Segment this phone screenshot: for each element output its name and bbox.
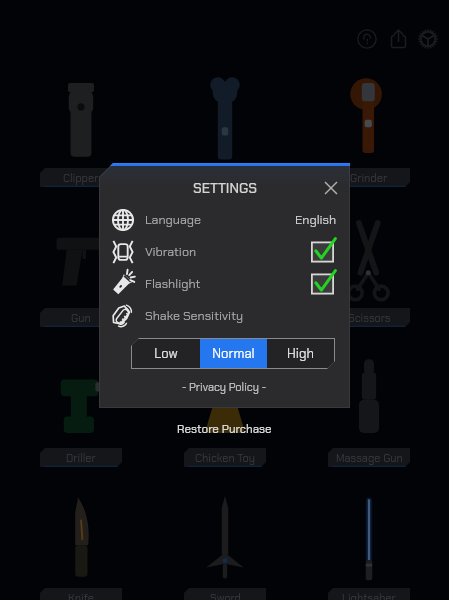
button[interactable]: Grinder — [328, 168, 410, 187]
staticText: Clipper — [63, 171, 99, 185]
button[interactable]: Vibration — [99, 236, 350, 268]
staticText: Gun — [71, 311, 91, 325]
button[interactable]: Shake Sensitivity — [99, 300, 350, 332]
button[interactable]: Language — [99, 204, 350, 236]
button[interactable]: Driller — [40, 448, 122, 467]
staticText: Hammer — [204, 311, 247, 325]
button[interactable]: Shaver — [184, 168, 266, 187]
staticText: Knife — [68, 591, 94, 600]
button[interactable]: High — [267, 339, 334, 368]
button[interactable]: Massage Gun — [328, 448, 410, 467]
button[interactable]: Help — [355, 27, 379, 51]
staticText: Flashlight — [145, 276, 201, 292]
button[interactable]: Clipper — [40, 168, 122, 187]
button[interactable]: Restore Purchase — [177, 422, 272, 437]
staticText: Chicken Toy — [195, 451, 256, 465]
staticText: Massage Gun — [336, 451, 403, 465]
staticText: Vibration — [145, 244, 197, 260]
staticText: Sword — [210, 591, 241, 600]
button[interactable]: Toggle — [318, 268, 334, 300]
button[interactable]: Gun — [40, 308, 122, 327]
staticText: Low — [154, 345, 178, 362]
staticText: Normal — [212, 345, 255, 362]
button[interactable]: Flashlight — [99, 268, 350, 300]
button[interactable]: Close — [321, 178, 341, 198]
staticText: High — [287, 345, 314, 362]
button[interactable]: Hammer — [184, 308, 266, 327]
button[interactable]: Settings — [416, 27, 440, 51]
staticText: Lightsaber — [342, 591, 396, 600]
staticText: SETTINGS — [193, 179, 257, 197]
button[interactable]: Scissors — [328, 308, 410, 327]
staticText: Language — [145, 212, 202, 228]
staticText: Scissors — [348, 311, 391, 325]
staticText: English — [295, 212, 337, 228]
staticText: Driller — [66, 451, 96, 465]
button[interactable]: Lightsaber — [328, 588, 410, 600]
button[interactable]: Sword — [184, 588, 266, 600]
staticText: Grinder — [350, 171, 388, 185]
button[interactable]: Toggle — [318, 236, 334, 268]
staticText: Shake Sensitivity — [145, 308, 244, 324]
staticText: Shaver — [208, 171, 243, 185]
button[interactable]: - Privacy Policy - — [182, 380, 267, 394]
button[interactable]: Chicken Toy — [184, 448, 266, 467]
button[interactable]: Normal — [200, 339, 267, 368]
button[interactable]: Knife — [40, 588, 122, 600]
button[interactable]: Share — [386, 26, 411, 51]
button[interactable]: Low — [132, 339, 200, 368]
